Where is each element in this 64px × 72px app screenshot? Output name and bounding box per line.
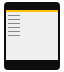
button[interactable] bbox=[6, 25, 58, 29]
button[interactable] bbox=[6, 33, 58, 37]
button[interactable] bbox=[6, 21, 58, 25]
button[interactable] bbox=[6, 29, 58, 33]
button[interactable] bbox=[6, 13, 58, 17]
button[interactable] bbox=[6, 17, 58, 21]
